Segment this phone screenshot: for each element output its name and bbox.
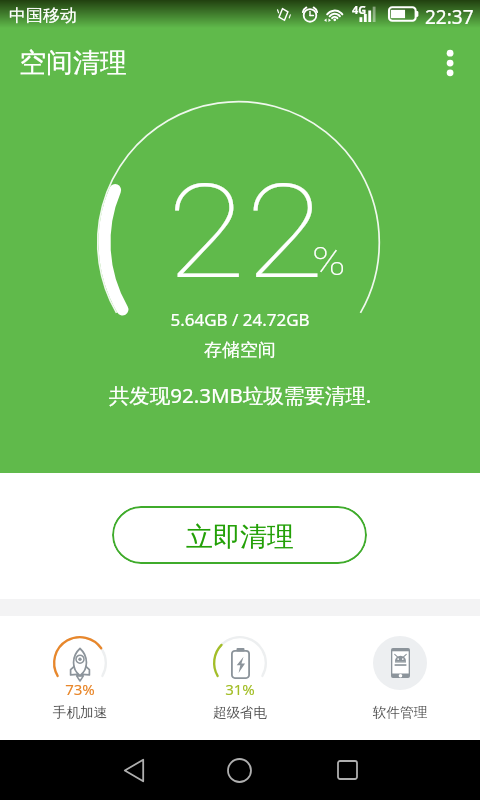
button[interactable]: 软件管理 <box>320 616 480 740</box>
staticText: % <box>312 240 346 285</box>
staticText: 31% <box>160 679 320 699</box>
button[interactable]: 73% <box>0 616 160 740</box>
staticText: 空间清理 <box>19 46 127 80</box>
button[interactable]: Home <box>199 740 279 800</box>
staticText: 5.64GB / 24.72GB <box>0 308 480 331</box>
staticText: 手机加速 <box>0 704 160 721</box>
button[interactable]: Recents <box>307 740 387 800</box>
staticText: 22:37 <box>425 4 474 30</box>
staticText: 存储空间 <box>0 339 480 362</box>
button[interactable]: 31% <box>160 616 320 740</box>
staticText: 超级省电 <box>160 704 320 721</box>
button[interactable]: Back <box>94 740 174 800</box>
staticText: 共发现92.3MB垃圾需要清理. <box>0 381 480 409</box>
staticText: 73% <box>0 679 160 699</box>
staticText: 中国移动 <box>9 5 77 26</box>
staticText: 22 <box>167 157 325 309</box>
staticText: 4G <box>352 2 367 17</box>
button[interactable]: 立即清理 <box>112 506 367 564</box>
button[interactable]: More options <box>425 28 473 90</box>
staticText: 软件管理 <box>320 704 480 721</box>
staticText: 立即清理 <box>186 520 294 554</box>
